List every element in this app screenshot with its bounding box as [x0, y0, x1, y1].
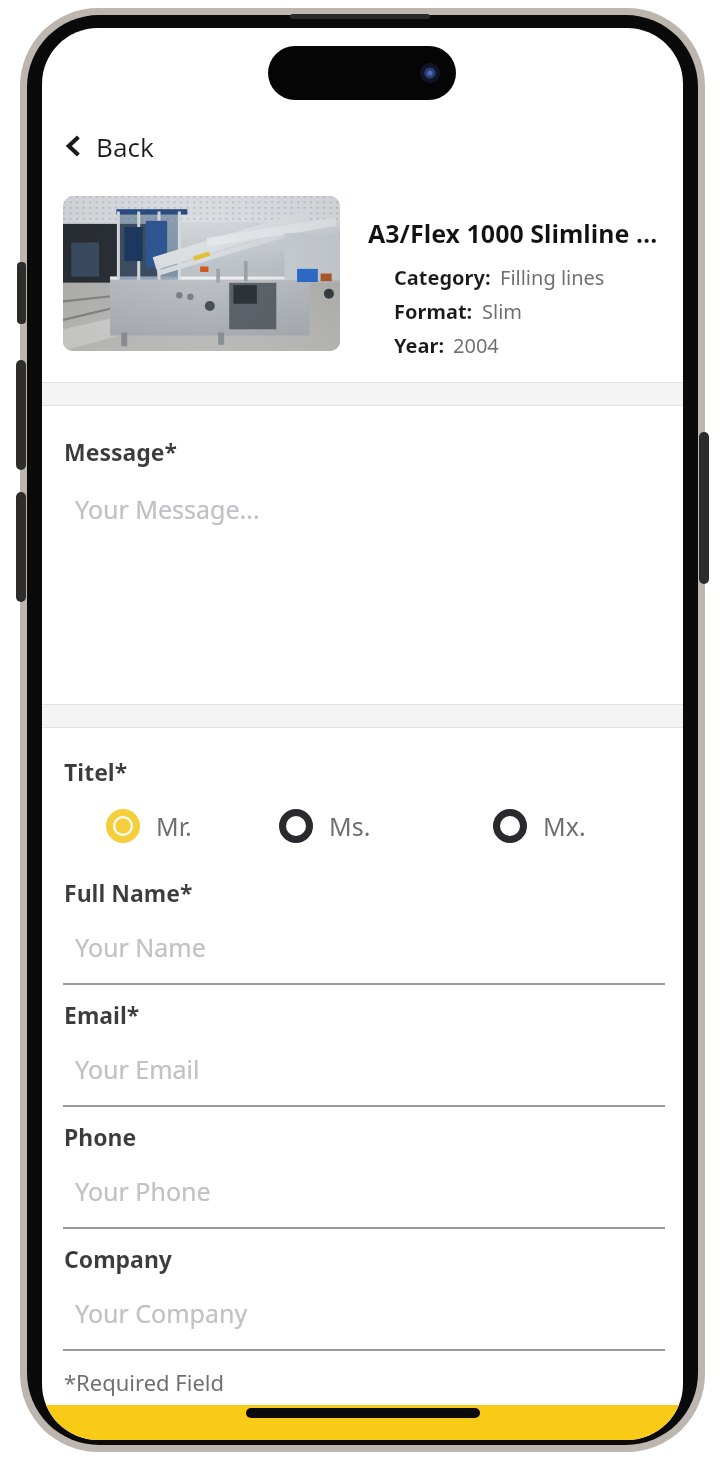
staticText: Category:	[394, 264, 491, 291]
staticText: Back	[96, 129, 154, 164]
staticText: Mr.	[156, 809, 192, 843]
staticText: A3/Flex 1000 Slimline …	[368, 216, 658, 250]
staticText: Ms.	[329, 809, 371, 843]
button[interactable]: Company	[42, 1229, 683, 1351]
button[interactable]: Message*	[42, 406, 683, 704]
staticText: Year:	[394, 332, 444, 359]
staticText: Phone	[64, 1121, 137, 1152]
button[interactable]: Full Name*	[42, 863, 683, 985]
staticText: Full Name*	[64, 877, 193, 908]
staticText: Message*	[64, 436, 178, 467]
staticText: Your Company	[75, 1296, 248, 1330]
staticText: Filling lines	[500, 264, 605, 291]
staticText: Slim	[482, 298, 522, 325]
staticText: Titel*	[64, 756, 128, 787]
staticText: Your Phone	[75, 1174, 211, 1208]
staticText: Your Email	[75, 1052, 200, 1086]
staticText: Mx.	[543, 809, 586, 843]
button[interactable]: Ms.	[279, 809, 469, 843]
staticText: *Required Field	[64, 1367, 225, 1397]
staticText: Your Name	[75, 930, 206, 964]
button[interactable]: Back	[60, 122, 158, 170]
button[interactable]: Phone	[42, 1107, 683, 1229]
button[interactable]: Mr.	[106, 809, 255, 843]
staticText: 2004	[453, 332, 499, 359]
staticText: Company	[64, 1243, 172, 1274]
button[interactable]: Mx.	[493, 809, 683, 843]
staticText: Your Message...	[75, 492, 260, 526]
button[interactable]: Email*	[42, 985, 683, 1107]
staticText: Format:	[394, 298, 473, 325]
staticText: Email*	[64, 999, 140, 1030]
